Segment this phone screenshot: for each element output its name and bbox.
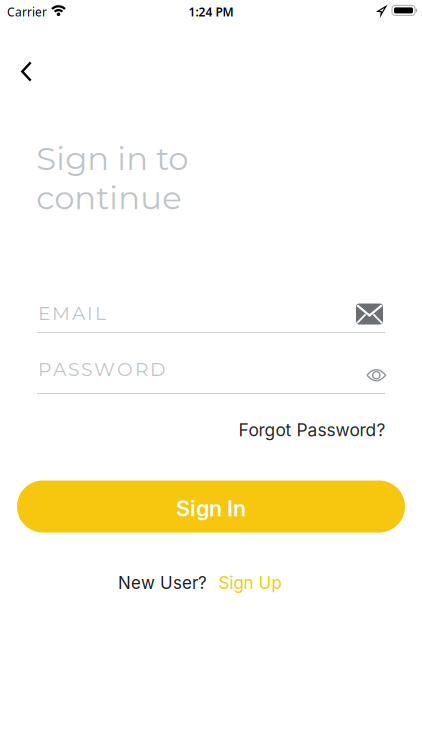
staticText: Sign In	[176, 495, 246, 521]
button[interactable]: Sign Up	[218, 572, 281, 593]
staticText: Forgot Password?	[238, 419, 385, 440]
button[interactable]: Password	[37, 358, 385, 394]
button[interactable]: Forgot Password?	[238, 419, 385, 440]
button[interactable]: Show password	[362, 364, 390, 387]
button[interactable]: Sign In	[17, 480, 405, 532]
staticText: New User?	[118, 572, 207, 593]
button[interactable]: Back	[4, 49, 48, 93]
staticText: P A S S W O R D	[38, 358, 165, 381]
staticText: Sign Up	[218, 572, 281, 593]
button[interactable]: Email	[37, 302, 385, 333]
staticText: Carrier	[7, 4, 47, 20]
staticText: 1:24 PM	[188, 4, 233, 20]
staticText: E M A I L	[38, 302, 106, 325]
staticText: Sign in to continue	[36, 139, 188, 217]
